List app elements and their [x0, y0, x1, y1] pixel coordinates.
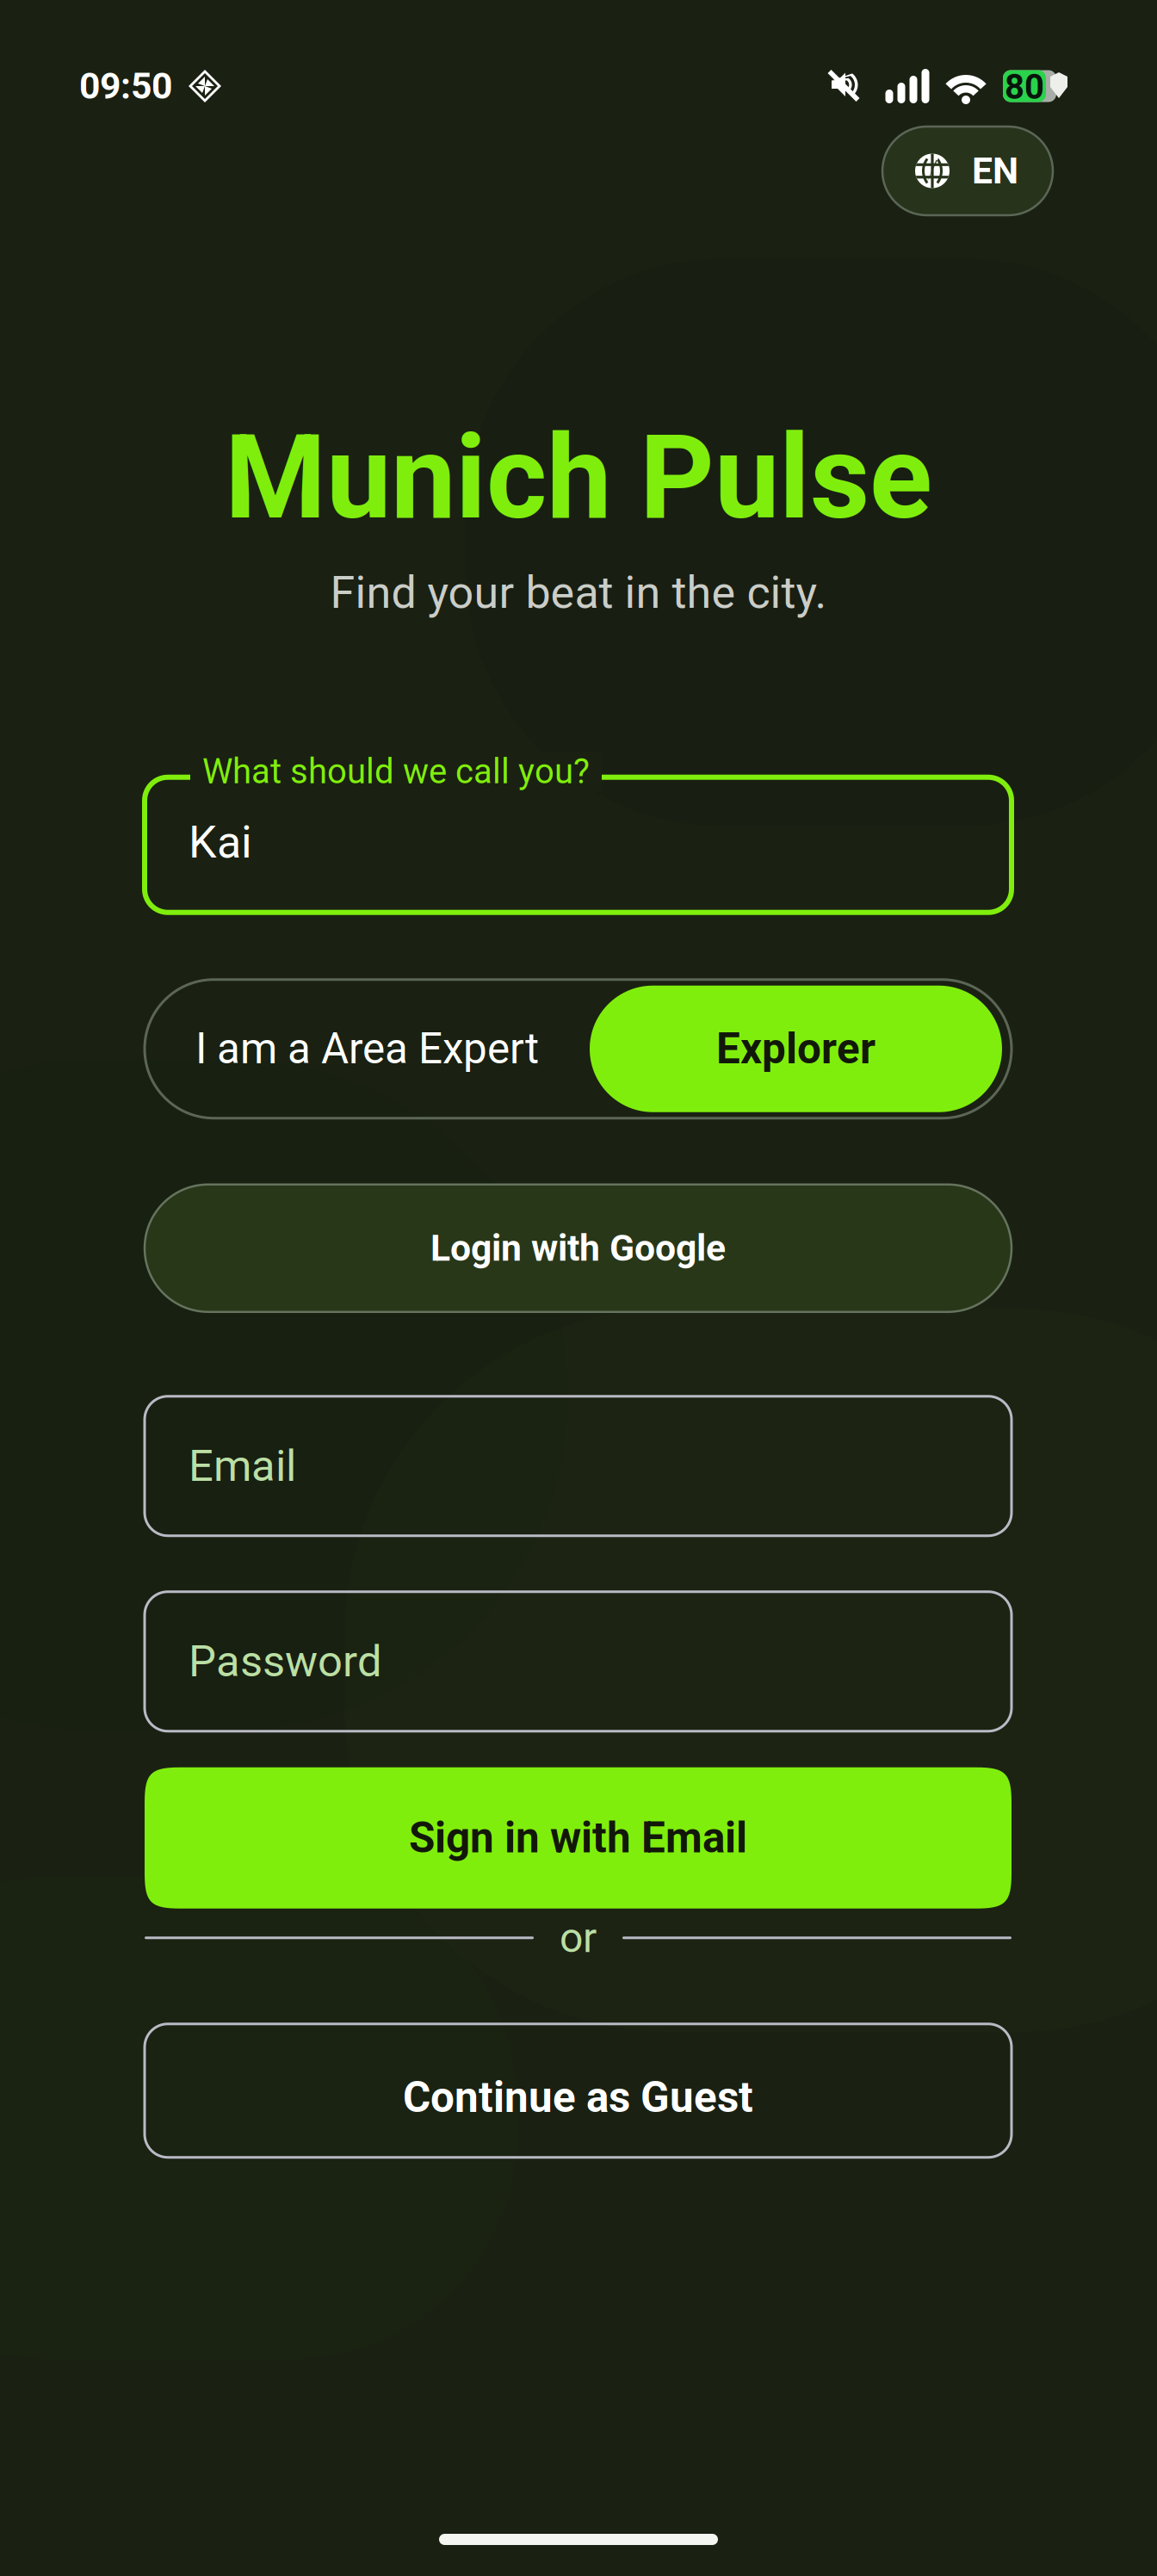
staticText: Munich Pulse [225, 410, 932, 546]
staticText: 80 [1005, 67, 1044, 107]
button[interactable]: I am a Area Expert [145, 980, 590, 1118]
staticText: Sign in with Email [409, 1813, 747, 1863]
staticText: EN [972, 149, 1018, 192]
staticText: Continue as Guest [403, 2073, 753, 2122]
staticText: or [560, 1914, 597, 1962]
staticText: Explorer [716, 1024, 875, 1074]
staticText: What should we call you? [202, 751, 590, 792]
button[interactable]: Continue as Guest [145, 2024, 1012, 2157]
button[interactable]: Login with Google [145, 1185, 1012, 1312]
button[interactable]: Language: EN [882, 127, 1053, 215]
staticText: I am a Area Expert [195, 1024, 539, 1074]
staticText: Email [189, 1440, 296, 1492]
staticText: Login with Google [430, 1227, 726, 1270]
staticText: Find your beat in the city. [330, 566, 827, 619]
staticText: 09:50 [79, 65, 172, 108]
button[interactable]: Sign in with Email [145, 1767, 1012, 1909]
button[interactable]: Explorer [590, 986, 1002, 1112]
staticText: Kai [189, 816, 252, 868]
staticText: Password [189, 1636, 382, 1687]
